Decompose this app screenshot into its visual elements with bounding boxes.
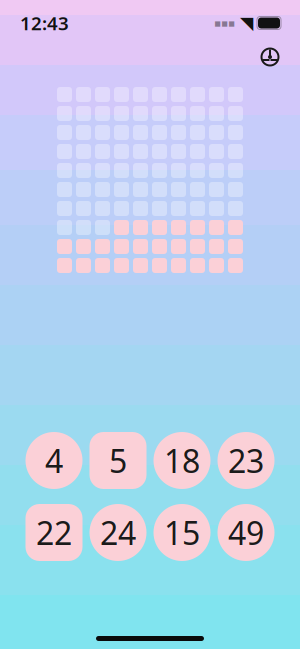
staticText: ◥ <box>240 13 253 33</box>
staticText: 4 <box>45 439 63 482</box>
staticText: 24 <box>100 511 136 554</box>
staticText: ▪▪▪ <box>214 17 235 29</box>
button[interactable]: 5 <box>89 432 146 489</box>
staticText: 22 <box>36 511 72 554</box>
button[interactable]: 22 <box>25 504 82 561</box>
staticText: 5 <box>109 439 127 482</box>
button[interactable]: 18 <box>153 432 210 489</box>
button[interactable]: 23 <box>217 432 274 489</box>
button[interactable]: 49 <box>217 504 274 561</box>
button[interactable]: Settings <box>253 40 287 74</box>
staticText: 18 <box>164 439 200 482</box>
staticText: 15 <box>164 511 200 554</box>
staticText: 12:43 <box>20 11 69 35</box>
staticText: 23 <box>228 439 264 482</box>
button[interactable]: 4 <box>25 432 82 489</box>
button[interactable]: 15 <box>153 504 210 561</box>
button[interactable]: 24 <box>89 504 146 561</box>
staticText: 49 <box>228 511 264 554</box>
